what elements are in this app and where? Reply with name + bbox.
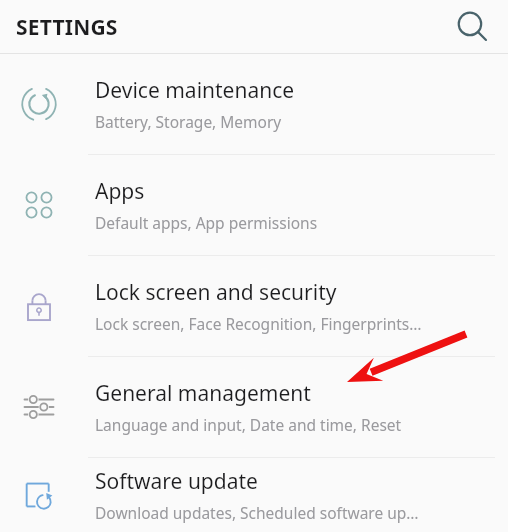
- staticText: Software update: [95, 467, 258, 496]
- button[interactable]: Lock screen and security: [0, 256, 508, 356]
- staticText: Download updates, Scheduled software up…: [95, 502, 419, 523]
- staticText: General management: [95, 379, 311, 408]
- staticText: Default apps, App permissions: [95, 212, 318, 233]
- button[interactable]: Apps: [0, 155, 508, 255]
- staticText: SETTINGS: [16, 13, 118, 42]
- button[interactable]: Software update: [0, 458, 508, 532]
- staticText: Lock screen and security: [95, 278, 337, 307]
- staticText: Battery, Storage, Memory: [95, 111, 282, 132]
- button[interactable]: Device maintenance: [0, 54, 508, 154]
- staticText: Device maintenance: [95, 76, 295, 105]
- staticText: Apps: [95, 177, 145, 206]
- button[interactable]: General management: [0, 357, 508, 457]
- button[interactable]: Search: [450, 5, 494, 49]
- staticText: Language and input, Date and time, Reset: [95, 414, 402, 435]
- staticText: Lock screen, Face Recognition, Fingerpri…: [95, 313, 422, 334]
